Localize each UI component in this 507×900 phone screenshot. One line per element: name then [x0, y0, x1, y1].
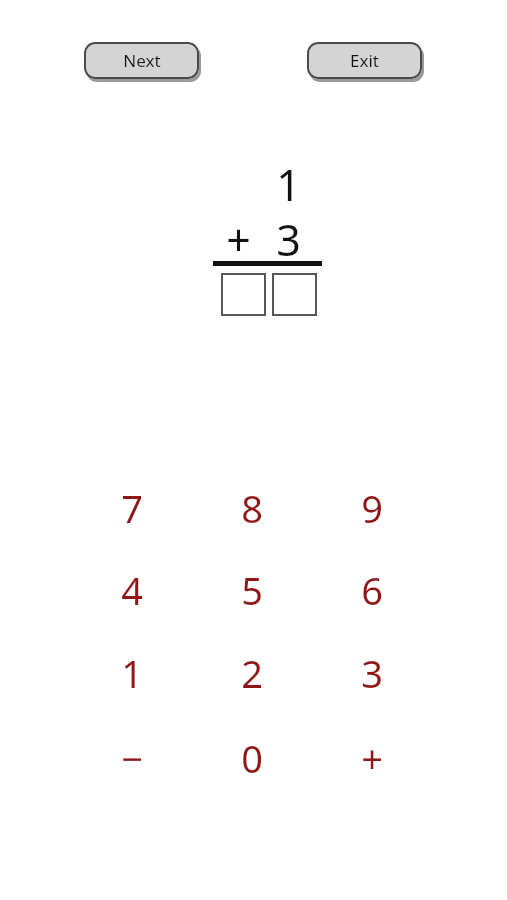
button[interactable]: 8: [204, 467, 300, 549]
staticText: 0: [241, 732, 263, 784]
staticText: 2: [241, 647, 263, 699]
staticText: 3: [276, 210, 301, 266]
staticText: 4: [121, 564, 143, 616]
staticText: 1: [276, 155, 301, 211]
staticText: 3: [361, 647, 383, 699]
button[interactable]: 3: [324, 632, 420, 714]
staticText: +: [361, 732, 383, 784]
button[interactable]: 1: [84, 632, 180, 714]
button[interactable]: +: [324, 717, 420, 799]
button[interactable]: Tens answer box: [221, 273, 266, 316]
staticText: 1: [121, 647, 143, 699]
button[interactable]: 2: [204, 632, 300, 714]
button[interactable]: 5: [204, 549, 300, 631]
button[interactable]: 6: [324, 549, 420, 631]
staticText: 7: [121, 482, 143, 534]
button[interactable]: Exit: [307, 42, 422, 79]
button[interactable]: 7: [84, 467, 180, 549]
staticText: 8: [241, 482, 263, 534]
button[interactable]: 4: [84, 549, 180, 631]
staticText: +: [226, 210, 251, 266]
staticText: Exit: [350, 49, 379, 72]
button[interactable]: Next: [84, 42, 199, 79]
staticText: −: [121, 732, 143, 784]
button[interactable]: −: [84, 717, 180, 799]
staticText: 9: [361, 482, 383, 534]
button[interactable]: 0: [204, 717, 300, 799]
button[interactable]: Ones answer box: [272, 273, 317, 316]
staticText: Next: [123, 49, 161, 72]
staticText: 5: [241, 564, 263, 616]
button[interactable]: 9: [324, 467, 420, 549]
staticText: 6: [361, 564, 383, 616]
